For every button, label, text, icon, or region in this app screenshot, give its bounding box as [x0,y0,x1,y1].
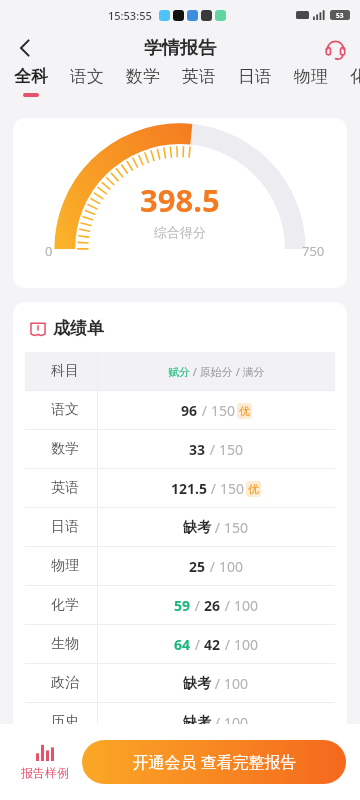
staticText: 综合得分 [154,224,206,240]
staticText: 59 [174,596,191,615]
button[interactable]: 物理 [294,66,328,93]
staticText: 成绩单 [53,318,104,339]
staticText: / [221,596,234,615]
staticText: / [211,518,224,537]
button[interactable]: 报告样例 [14,744,76,780]
button[interactable]: 英语 [182,66,216,93]
staticText: 缺考 [183,675,211,693]
staticText: 缺考 [183,714,211,732]
staticText: 科目 [51,362,79,380]
staticText: / [191,596,204,615]
staticText: / [211,674,224,693]
staticText: 政治 [51,674,79,692]
staticText: 150 [211,401,236,420]
staticText: 100 [224,713,249,732]
staticText: 物理 [51,557,79,575]
staticText: 150 [224,518,249,537]
staticText: 0 [45,242,53,260]
staticText: / [207,479,220,498]
staticText: 化学 [51,596,79,614]
staticText: 日语 [238,66,272,87]
button[interactable]: 数学 [126,66,160,93]
staticText: 日语 [51,518,79,536]
staticText: 数学 [126,66,160,87]
staticText: 物理 [294,66,328,87]
staticText: 生物 [51,635,79,653]
staticText: 优 [248,482,259,496]
button[interactable]: 全科 [14,66,48,97]
staticText: 33 [189,440,206,459]
staticText: 全科 [14,66,48,87]
staticText: / [206,440,219,459]
staticText: 26 [204,596,221,615]
staticText: 53 [336,11,344,20]
staticText: 64 [174,635,191,654]
staticText: 398.5 [140,179,220,221]
button[interactable]: 日语 [238,66,272,93]
staticText: 100 [224,674,249,693]
staticText: 100 [234,596,259,615]
staticText: 缺考 [183,519,211,537]
staticText: 25 [189,557,206,576]
staticText: / [211,713,224,732]
staticText: / [198,401,211,420]
staticText: 开通会员 查看完整报告 [132,751,297,773]
button[interactable]: Back [6,30,44,66]
staticText: / 原始分 / 满分 [190,364,265,379]
button[interactable]: Customer service [318,31,352,65]
staticText: 100 [234,635,259,654]
staticText: 学情报告 [144,37,216,60]
staticText: / [221,635,234,654]
staticText: 150 [219,440,244,459]
button[interactable]: 语文 [70,66,104,93]
staticText: 15:53:55 [108,8,152,23]
staticText: 语文 [51,401,79,419]
staticText: 语文 [70,66,104,87]
staticText: 英语 [51,479,79,497]
staticText: 历史 [51,713,79,731]
staticText: 优 [239,404,250,418]
staticText: 赋分 [168,365,190,379]
staticText: / [206,557,219,576]
staticText: 121.5 [171,479,207,498]
staticText: 100 [219,557,244,576]
staticText: 数学 [51,440,79,458]
staticText: 750 [302,242,325,260]
staticText: 150 [220,479,245,498]
staticText: 英语 [182,66,216,87]
staticText: 96 [181,401,198,420]
staticText: 报告样例 [21,765,69,780]
button[interactable]: 开通会员 查看完整报告 [82,740,346,784]
staticText: 42 [204,635,221,654]
staticText: / [191,635,204,654]
